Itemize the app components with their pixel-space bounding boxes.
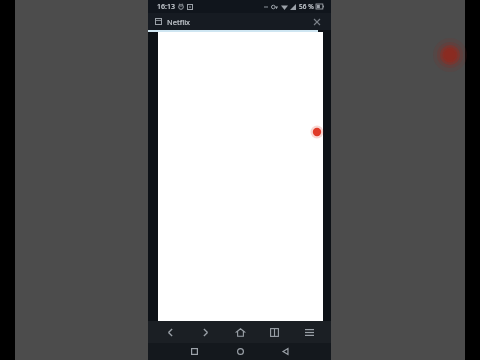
- staticText: 16:13: [157, 2, 175, 12]
- button[interactable]: Recent apps: [179, 343, 209, 360]
- button[interactable]: Home: [225, 343, 255, 360]
- button[interactable]: Menu: [296, 321, 322, 343]
- button[interactable]: Close: [310, 15, 324, 29]
- button[interactable]: Tabs: [261, 321, 287, 343]
- button[interactable]: Back: [270, 343, 300, 360]
- staticText: Netflix: [167, 17, 191, 27]
- staticText: 56 %: [299, 2, 314, 11]
- button[interactable]: Home: [227, 321, 253, 343]
- button[interactable]: Forward: [192, 321, 218, 343]
- button[interactable]: Back: [157, 321, 183, 343]
